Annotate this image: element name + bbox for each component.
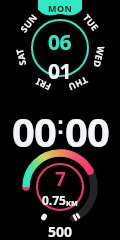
- staticText: MON: [48, 2, 73, 14]
- staticText: 0.75: [42, 192, 66, 208]
- staticText: 00: [65, 104, 109, 150]
- staticText: 7: [55, 166, 66, 192]
- staticText: 00: [12, 104, 56, 150]
- button[interactable]: Activity, 7 of 500, 0.75 km: [0, 152, 120, 240]
- staticText: 500: [48, 222, 73, 240]
- button[interactable]: Time 00:00: [0, 104, 120, 150]
- staticText: км: [66, 197, 78, 208]
- staticText: 01: [48, 57, 72, 86]
- staticText: 06: [48, 28, 72, 57]
- button[interactable]: Date, Monday 06 01: [0, 0, 120, 100]
